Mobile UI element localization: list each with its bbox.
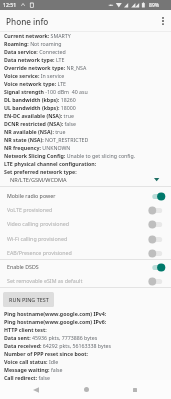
staticText: NR/LTE/GSM/WCDMA [10,176,67,184]
staticText: UL bandwidth (kbps): 18000 [4,104,76,111]
button[interactable]: Home [76,380,96,399]
staticText: Data service: Connected [4,48,66,55]
button[interactable]: VoLTE provisioned [0,203,171,217]
staticText: Number of PPP reset since boot: [4,350,89,357]
staticText: Message waiting: false [4,366,63,373]
staticText: RUN PING TEST [9,296,49,303]
staticText: NR frequency: UNKNOWN [4,144,71,151]
staticText: Video calling provisioned [7,220,70,227]
staticText: Network Slicing Config: Unable to get sl… [4,152,136,159]
staticText: Data sent: 45936 pkts, 7773886 bytes [4,334,98,341]
staticText: Wi-Fi calling provisioned [7,235,68,242]
staticText: Mobile radio power [7,192,56,199]
button[interactable]: RUN PING TEST [3,292,54,307]
staticText: HTTP client test: [4,326,47,333]
staticText: Voice service: In service [4,72,65,79]
staticText: Enable DSDS [7,263,39,270]
staticText: NR available (NSA): true [4,128,66,135]
button[interactable]: Enable DSDS [0,260,171,274]
staticText: Current network: SMARTY [4,32,71,39]
staticText: DL bandwidth (kbps): 18260 [4,96,76,103]
staticText: DCNR restricted (NSA): false [4,120,77,127]
staticText: Ping hostname(www.google.com) IPv6: [4,318,107,325]
button[interactable]: EAB/Presence provisioned [0,246,171,260]
staticText: Data network type: LTE [4,56,65,63]
staticText: Set removable eSIM as default [7,277,83,284]
staticText: Voice network type: LTE [4,80,66,87]
button[interactable]: More options [155,13,171,29]
staticText: 12:51 [3,2,17,9]
staticText: Voice call status: Idle [4,358,59,365]
button[interactable]: Back [26,380,46,399]
staticText: EAB/Presence provisioned [7,249,72,256]
staticText: Ping hostname(www.google.com) IPv4: [4,310,107,317]
staticText: 89% [149,2,160,9]
button[interactable]: Set removable eSIM as default [0,274,171,288]
staticText: NR state (NSA): NOT_RESTRICTED [4,136,89,143]
staticText: Phone info [6,16,49,27]
staticText: LTE physical channel configuration: [4,160,97,167]
button[interactable]: Recents [125,380,145,399]
staticText: Data received: 64292 pkts, 56163338 byte… [4,342,112,349]
button[interactable]: Mobile radio power [0,189,171,203]
staticText: EN-DC available (NSA): true [4,112,74,119]
staticText: VoLTE provisioned [7,206,53,213]
button[interactable]: Wi-Fi calling provisioned [0,232,171,246]
staticText: Override network type: NR_NSA [4,64,87,71]
staticText: Signal strength -100 dBm 40 asu [4,88,88,95]
button[interactable]: NR/LTE/GSM/WCDMA [0,173,171,186]
button[interactable]: Video calling provisioned [0,217,171,231]
staticText: Call redirect: false [4,374,51,381]
staticText: Roaming: Not roaming [4,40,62,47]
staticText: Set preferred network type: [4,168,77,175]
